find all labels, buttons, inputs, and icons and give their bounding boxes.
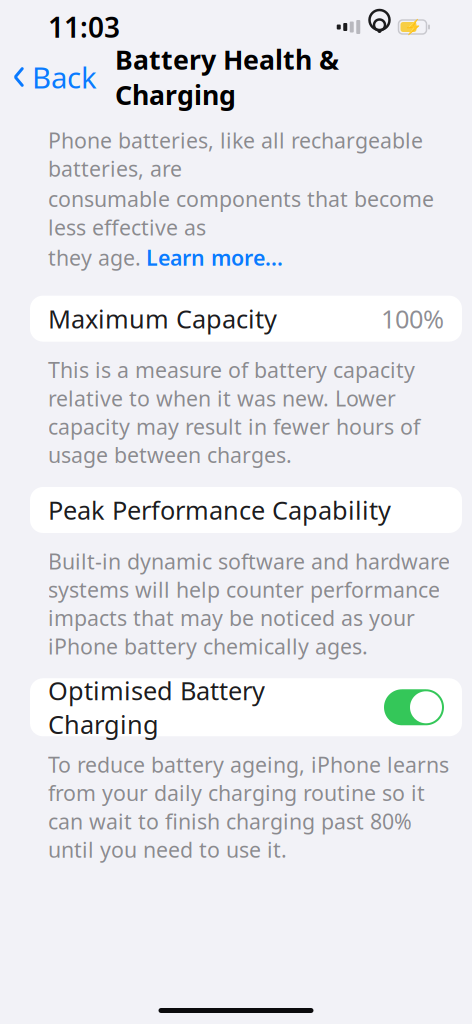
staticText: This is a measure of battery capacity re… xyxy=(48,356,420,469)
staticText: Optimised Battery Charging xyxy=(48,674,265,741)
staticText: Battery Health & Charging xyxy=(115,42,339,112)
staticText: ⚡ xyxy=(403,19,421,35)
staticText: Phone batteries, like all rechargeable b… xyxy=(48,126,423,183)
staticText: 11:03 xyxy=(48,8,120,46)
staticText: consumable components that become less e… xyxy=(48,185,434,241)
button[interactable]: Learn more... xyxy=(146,243,283,272)
staticText: Learn more... xyxy=(146,243,283,272)
button[interactable]: Back xyxy=(0,51,97,102)
staticText: To reduce battery ageing, iPhone learns … xyxy=(48,750,449,864)
button[interactable]: Peak Performance Capability xyxy=(30,487,462,533)
staticText: Peak Performance Capability xyxy=(48,493,391,527)
button[interactable]: Optimised Battery Charging xyxy=(30,678,462,736)
staticText: they age. xyxy=(48,243,141,272)
staticText: 100% xyxy=(381,302,444,335)
staticText: Built-in dynamic software and hardware s… xyxy=(48,547,450,660)
staticText: Back xyxy=(32,57,97,96)
staticText: Maximum Capacity xyxy=(48,302,277,335)
button[interactable]: Maximum Capacity xyxy=(30,296,462,342)
